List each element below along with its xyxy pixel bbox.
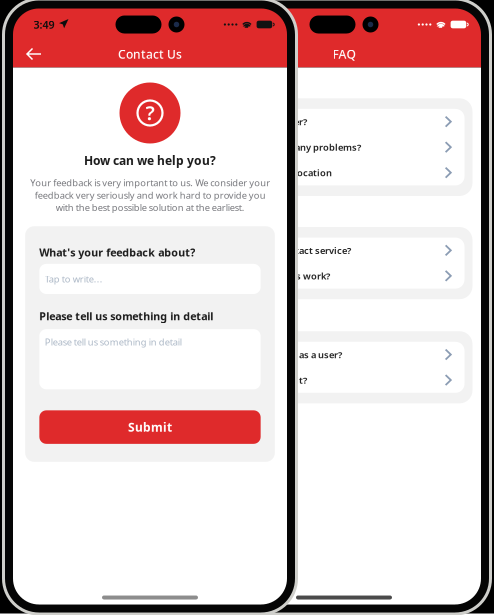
button[interactable]: How does this work? xyxy=(223,263,464,289)
staticText: FAQ xyxy=(332,46,355,62)
button[interactable]: Back xyxy=(13,40,50,67)
staticText: How do I contact service? xyxy=(236,244,351,257)
staticText: Submit xyxy=(128,419,172,435)
button[interactable]: How do I use it? xyxy=(223,367,464,393)
button[interactable]: What can I do as a user? xyxy=(223,342,464,367)
staticText: 3:49 xyxy=(33,17,54,32)
staticText: Please tell us something in detail xyxy=(39,309,213,323)
staticText: Tap to write... xyxy=(45,273,103,285)
staticText: How can we help you? xyxy=(84,152,216,168)
button[interactable]: What if I face any problems? xyxy=(223,134,464,160)
button[interactable]: How do I order? xyxy=(223,109,464,134)
staticText: Please tell us something in detail xyxy=(45,336,182,348)
button[interactable]: Submit xyxy=(39,410,261,444)
staticText: What if I face any problems? xyxy=(236,141,361,153)
staticText: How do I use it? xyxy=(236,374,307,386)
staticText: Your feedback is very important to us. W… xyxy=(30,176,270,214)
button[interactable]: How do I contact service? xyxy=(223,238,464,263)
staticText: Contact Us xyxy=(118,46,182,62)
staticText: How do I order? xyxy=(236,115,307,128)
staticText: How do I set location xyxy=(236,166,332,179)
button[interactable]: How do I set location xyxy=(223,160,464,185)
staticText: ? xyxy=(145,99,154,126)
staticText: How does this work? xyxy=(236,270,330,282)
staticText: What's your feedback about? xyxy=(39,245,195,259)
staticText: What can I do as a user? xyxy=(236,348,342,361)
